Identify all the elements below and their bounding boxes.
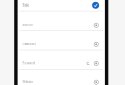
- staticText: Account: [22, 23, 33, 27]
- staticText: Title: [22, 4, 28, 7]
- button[interactable]: Save: [91, 1, 100, 10]
- button[interactable]: Clear field: [93, 41, 100, 48]
- staticText: Username: [22, 42, 35, 46]
- staticText: Password: [22, 61, 35, 65]
- staticText: Website: [22, 80, 32, 84]
- button[interactable]: Clear field: [93, 79, 100, 85]
- button[interactable]: Clear field: [93, 22, 100, 29]
- button[interactable]: Clear field: [93, 60, 100, 67]
- button[interactable]: Generate password: [85, 61, 91, 66]
